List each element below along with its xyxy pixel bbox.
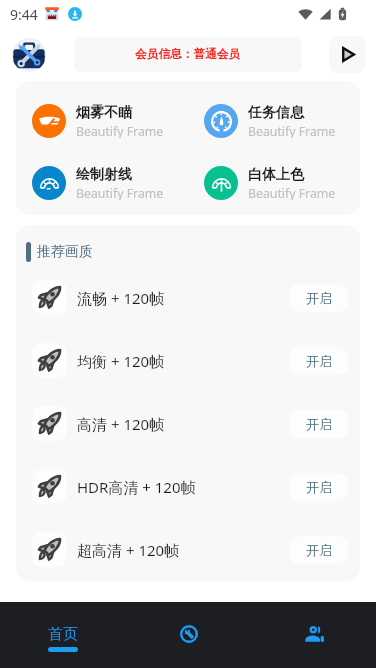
staticText: 白体上色: [248, 166, 304, 184]
staticText: 开启: [306, 542, 332, 558]
button[interactable]: 开启: [289, 347, 348, 375]
button[interactable]: 开启: [289, 284, 348, 312]
staticText: 绘制射线: [76, 166, 132, 184]
button[interactable]: 开启: [289, 410, 348, 438]
staticText: 开启: [306, 353, 332, 369]
staticText: 开启: [306, 479, 332, 495]
staticText: 首页: [48, 625, 78, 644]
button[interactable]: 超高清 + 120帧: [16, 518, 360, 581]
staticText: 均衡 + 120帧: [77, 351, 165, 371]
staticText: Beautify Frame: [76, 185, 164, 200]
staticText: 任务信息: [248, 104, 304, 122]
staticText: Beautify Frame: [76, 123, 164, 138]
staticText: 烟雾不瞄: [76, 104, 132, 122]
staticText: HDR高清 + 120帧: [77, 477, 196, 497]
button[interactable]: 白体上色: [188, 166, 360, 200]
button[interactable]: Toolbox: [12, 38, 46, 72]
staticText: 开启: [306, 416, 332, 432]
button[interactable]: Tools: [126, 602, 251, 668]
staticText: Beautify Frame: [248, 123, 336, 138]
staticText: 会员信息：普通会员: [135, 47, 241, 62]
staticText: 开启: [306, 290, 332, 306]
button[interactable]: 流畅 + 120帧: [16, 266, 360, 329]
button[interactable]: 首页: [0, 602, 126, 668]
button[interactable]: 均衡 + 120帧: [16, 329, 360, 392]
button[interactable]: 开启: [289, 473, 348, 501]
staticText: 超高清 + 120帧: [77, 540, 180, 560]
button[interactable]: Community: [251, 602, 376, 668]
button[interactable]: 开启: [289, 536, 348, 564]
button[interactable]: 绘制射线: [16, 166, 188, 200]
staticText: 推荐画质: [37, 243, 93, 261]
button[interactable]: 任务信息: [188, 104, 360, 138]
staticText: 高清 + 120帧: [77, 414, 165, 434]
staticText: Beautify Frame: [248, 185, 336, 200]
button[interactable]: 会员信息：普通会员: [74, 37, 302, 72]
button[interactable]: HDR高清 + 120帧: [16, 455, 360, 518]
button[interactable]: 烟雾不瞄: [16, 104, 188, 138]
staticText: 9:44: [10, 5, 38, 24]
staticText: 流畅 + 120帧: [77, 288, 165, 308]
button[interactable]: Play: [329, 36, 366, 73]
button[interactable]: 高清 + 120帧: [16, 392, 360, 455]
